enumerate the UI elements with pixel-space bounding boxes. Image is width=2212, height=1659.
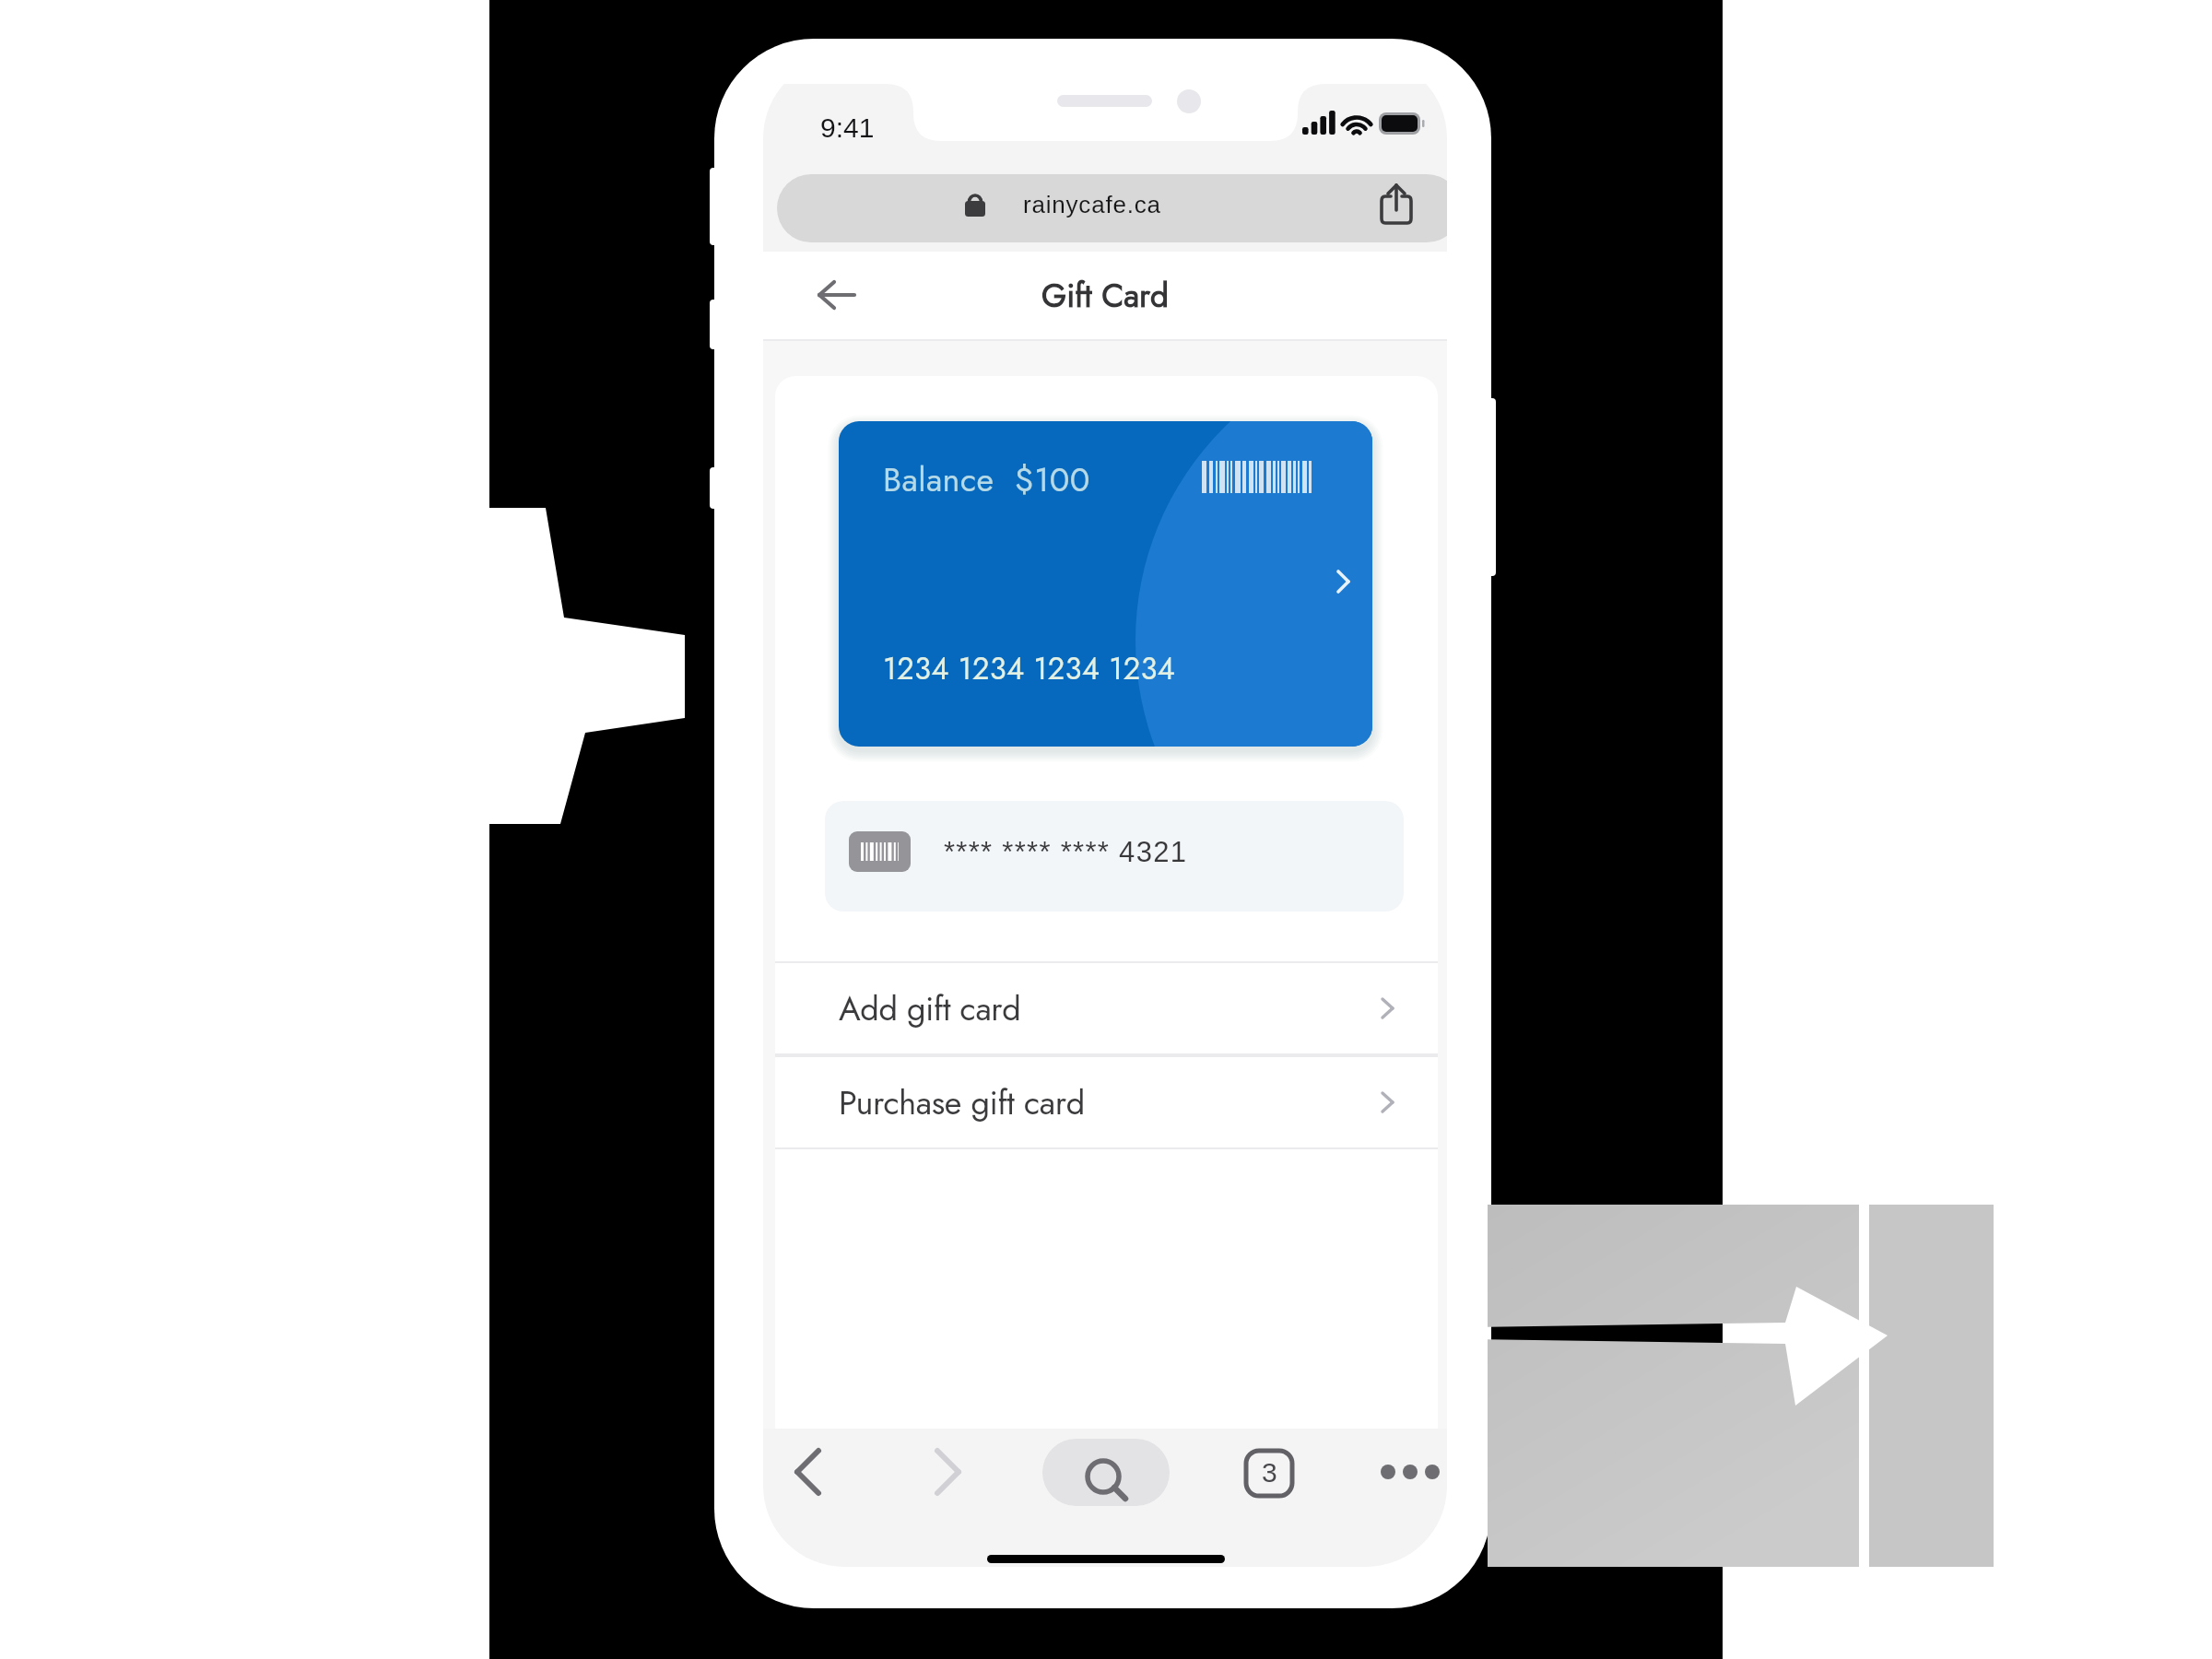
button[interactable]: Balance $100 xyxy=(839,421,1372,747)
button[interactable]: Back xyxy=(788,1441,830,1502)
button[interactable]: Share xyxy=(1374,178,1418,229)
staticText: Balance $100 xyxy=(883,455,1090,503)
button[interactable]: Purchase gift card xyxy=(775,1055,1438,1149)
staticText: Purchase gift card xyxy=(839,1078,1085,1126)
button[interactable]: **** **** **** 4321 xyxy=(825,801,1404,912)
button[interactable]: Tabs xyxy=(1242,1447,1296,1500)
staticText: **** **** **** 4321 xyxy=(944,836,1188,868)
button[interactable] xyxy=(777,174,1447,242)
button[interactable]: More options xyxy=(1371,1453,1434,1490)
staticText: 9:41 xyxy=(820,112,875,144)
button[interactable]: Back xyxy=(807,276,863,320)
staticText: Gift Card xyxy=(763,273,1447,320)
button[interactable]: Search xyxy=(1042,1439,1170,1506)
staticText: 3 xyxy=(1262,1457,1277,1488)
button[interactable]: Forward xyxy=(925,1441,968,1502)
staticText: 1234 1234 1234 1234 xyxy=(883,647,1176,691)
staticText: Add gift card xyxy=(839,984,1021,1032)
staticText: rainycafe.ca xyxy=(1023,191,1161,218)
button[interactable]: Add gift card xyxy=(775,961,1438,1055)
